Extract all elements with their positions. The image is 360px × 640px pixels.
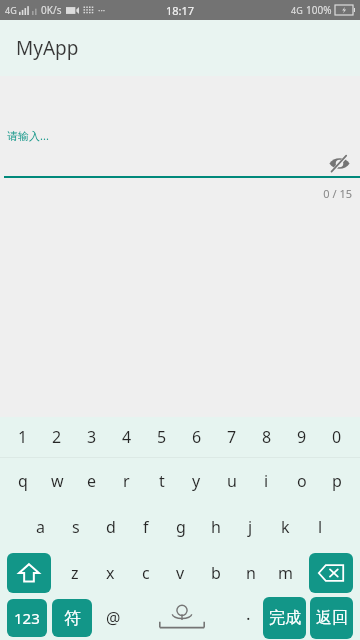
staticText: g	[176, 516, 186, 538]
button[interactable]: t	[144, 458, 179, 504]
staticText: 100%	[306, 3, 332, 17]
staticText: q	[18, 470, 28, 492]
staticText: u	[227, 470, 237, 492]
staticText: 返回	[316, 608, 348, 628]
button[interactable]: z	[57, 550, 93, 596]
button[interactable]: 5	[144, 417, 179, 457]
button[interactable]: 7	[214, 417, 249, 457]
staticText: t	[159, 470, 165, 492]
button[interactable]: 0	[319, 417, 354, 457]
button[interactable]: f	[128, 504, 163, 550]
button[interactable]: 2	[40, 417, 74, 457]
button[interactable]: Backspace	[309, 553, 353, 593]
staticText: 0 / 15	[323, 186, 352, 201]
button[interactable]: w	[40, 458, 74, 504]
staticText: r	[123, 470, 130, 492]
staticText: 123	[14, 608, 40, 628]
button[interactable]: i	[249, 458, 284, 504]
button[interactable]: 1	[6, 417, 40, 457]
staticText: z	[71, 562, 79, 584]
staticText: 5	[157, 426, 167, 448]
button[interactable]: @	[96, 596, 130, 640]
button[interactable]: 123	[7, 599, 47, 637]
staticText: 18:17	[166, 3, 195, 18]
button[interactable]: o	[284, 458, 319, 504]
button[interactable]: q	[6, 458, 40, 504]
staticText: b	[211, 562, 221, 584]
button[interactable]: y	[179, 458, 214, 504]
button[interactable]: Shift	[7, 553, 51, 593]
staticText: j	[248, 516, 253, 538]
staticText: 1	[18, 426, 28, 448]
staticText: 0K/s	[41, 3, 62, 17]
staticText: e	[87, 470, 97, 492]
button[interactable]: j	[233, 504, 268, 550]
button[interactable]: c	[128, 550, 163, 596]
button[interactable]: 返回	[310, 597, 353, 639]
staticText: a	[36, 516, 45, 538]
button[interactable]: h	[198, 504, 233, 550]
button[interactable]: l	[303, 504, 338, 550]
button[interactable]: m	[268, 550, 303, 596]
staticText: MyApp	[16, 35, 79, 61]
button[interactable]: n	[233, 550, 268, 596]
staticText: h	[211, 516, 221, 538]
staticText: 8	[262, 426, 272, 448]
staticText: m	[278, 562, 293, 584]
staticText: w	[51, 470, 64, 492]
staticText: 6	[192, 426, 202, 448]
staticText: 完成	[269, 608, 301, 628]
staticText: 4	[122, 426, 132, 448]
button[interactable]: g	[163, 504, 198, 550]
staticText: 7	[227, 426, 237, 448]
button[interactable]: 符	[52, 599, 92, 637]
button[interactable]: e	[74, 458, 109, 504]
staticText: v	[176, 562, 185, 584]
button[interactable]: 9	[284, 417, 319, 457]
staticText: 0	[332, 426, 342, 448]
button[interactable]: b	[198, 550, 233, 596]
button[interactable]: d	[93, 504, 128, 550]
button[interactable]: s	[58, 504, 93, 550]
button[interactable]: u	[214, 458, 249, 504]
button[interactable]: ·	[233, 596, 263, 640]
staticText: k	[281, 516, 290, 538]
button[interactable]: Toggle password visibility	[325, 149, 353, 177]
staticText: 3	[87, 426, 97, 448]
staticText: 请输入...	[7, 128, 49, 143]
button[interactable]: 3	[74, 417, 109, 457]
staticText: 符	[64, 608, 81, 629]
staticText: n	[246, 562, 256, 584]
staticText: x	[106, 562, 115, 584]
staticText: p	[332, 470, 342, 492]
button[interactable]: Space	[130, 596, 233, 640]
button[interactable]: p	[319, 458, 354, 504]
button[interactable]: x	[93, 550, 128, 596]
button[interactable]: 完成	[263, 597, 306, 639]
staticText: ···	[98, 4, 106, 16]
staticText: s	[72, 516, 80, 538]
staticText: 2	[52, 426, 62, 448]
button[interactable]: v	[163, 550, 198, 596]
staticText: ·	[246, 607, 251, 630]
button[interactable]: 8	[249, 417, 284, 457]
button[interactable]: r	[109, 458, 144, 504]
staticText: f	[143, 516, 149, 538]
button[interactable]: 6	[179, 417, 214, 457]
staticText: c	[142, 562, 150, 584]
staticText: y	[192, 470, 201, 492]
staticText: @	[106, 607, 121, 629]
button[interactable]: 4	[109, 417, 144, 457]
button[interactable]: a	[22, 504, 58, 550]
staticText: l	[318, 516, 323, 538]
staticText: 4G	[291, 4, 303, 16]
staticText: d	[106, 516, 116, 538]
staticText: o	[297, 470, 307, 492]
staticText: i	[264, 470, 269, 492]
staticText: 9	[297, 426, 307, 448]
staticText: 4G	[5, 4, 17, 16]
button[interactable]: k	[268, 504, 303, 550]
